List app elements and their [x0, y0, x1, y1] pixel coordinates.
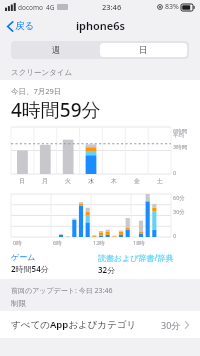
button[interactable]: ゲーム — [11, 252, 98, 274]
button[interactable]: 週 — [13, 43, 100, 57]
staticText: 30分 — [173, 208, 185, 216]
staticText: 0 — [173, 232, 177, 239]
staticText: ゲーム — [11, 252, 36, 262]
staticText: 読書および辞書/辞典 — [98, 252, 174, 263]
staticText: 18時 — [133, 239, 145, 247]
staticText: 週 — [52, 45, 61, 56]
staticText: 今日、7月29日 — [11, 86, 62, 96]
staticText: 日 — [19, 177, 25, 185]
staticText: 0時 — [13, 239, 22, 247]
staticText: 23:46 — [102, 2, 122, 12]
staticText: 戻る — [15, 20, 35, 32]
staticText: 土 — [157, 177, 163, 185]
staticText: 6時間 — [173, 127, 188, 135]
staticText: 火 — [65, 177, 71, 185]
staticText: 金 — [134, 177, 140, 185]
staticText: 水 — [88, 177, 94, 185]
staticText: 4G — [46, 3, 55, 12]
staticText: iphone6s — [76, 18, 125, 33]
other: Open all apps and categories — [185, 321, 189, 329]
button[interactable]: すべてのAppおよびカテゴリ — [0, 311, 200, 338]
button[interactable]: 戻る — [0, 17, 41, 35]
button[interactable]: 読書および辞書/辞典 — [98, 252, 193, 275]
staticText: 3時間 — [173, 143, 188, 151]
staticText: 4時間59分 — [11, 97, 101, 123]
staticText: スクリーンタイム — [11, 68, 73, 77]
staticText: 32分 — [98, 264, 116, 275]
staticText: 月 — [42, 177, 48, 185]
staticText: すべてのAppおよびカテゴリ — [11, 318, 137, 331]
staticText: 日 — [139, 45, 148, 56]
staticText: 60分 — [173, 194, 185, 202]
staticText: 6時 — [53, 239, 62, 247]
staticText: 2時間54分 — [11, 263, 49, 274]
staticText: 制限 — [11, 299, 26, 308]
staticText: 木 — [111, 177, 117, 185]
button[interactable]: 日 — [100, 43, 187, 57]
staticText: 前回のアップデート: 今日 23:46 — [11, 286, 113, 296]
staticText: 12時 — [93, 239, 105, 247]
staticText: 平均 — [173, 132, 184, 139]
staticText: 30分 — [161, 319, 181, 331]
staticText: 0 — [173, 169, 177, 176]
staticText: 83% — [165, 2, 179, 12]
staticText: docomo — [18, 3, 43, 12]
